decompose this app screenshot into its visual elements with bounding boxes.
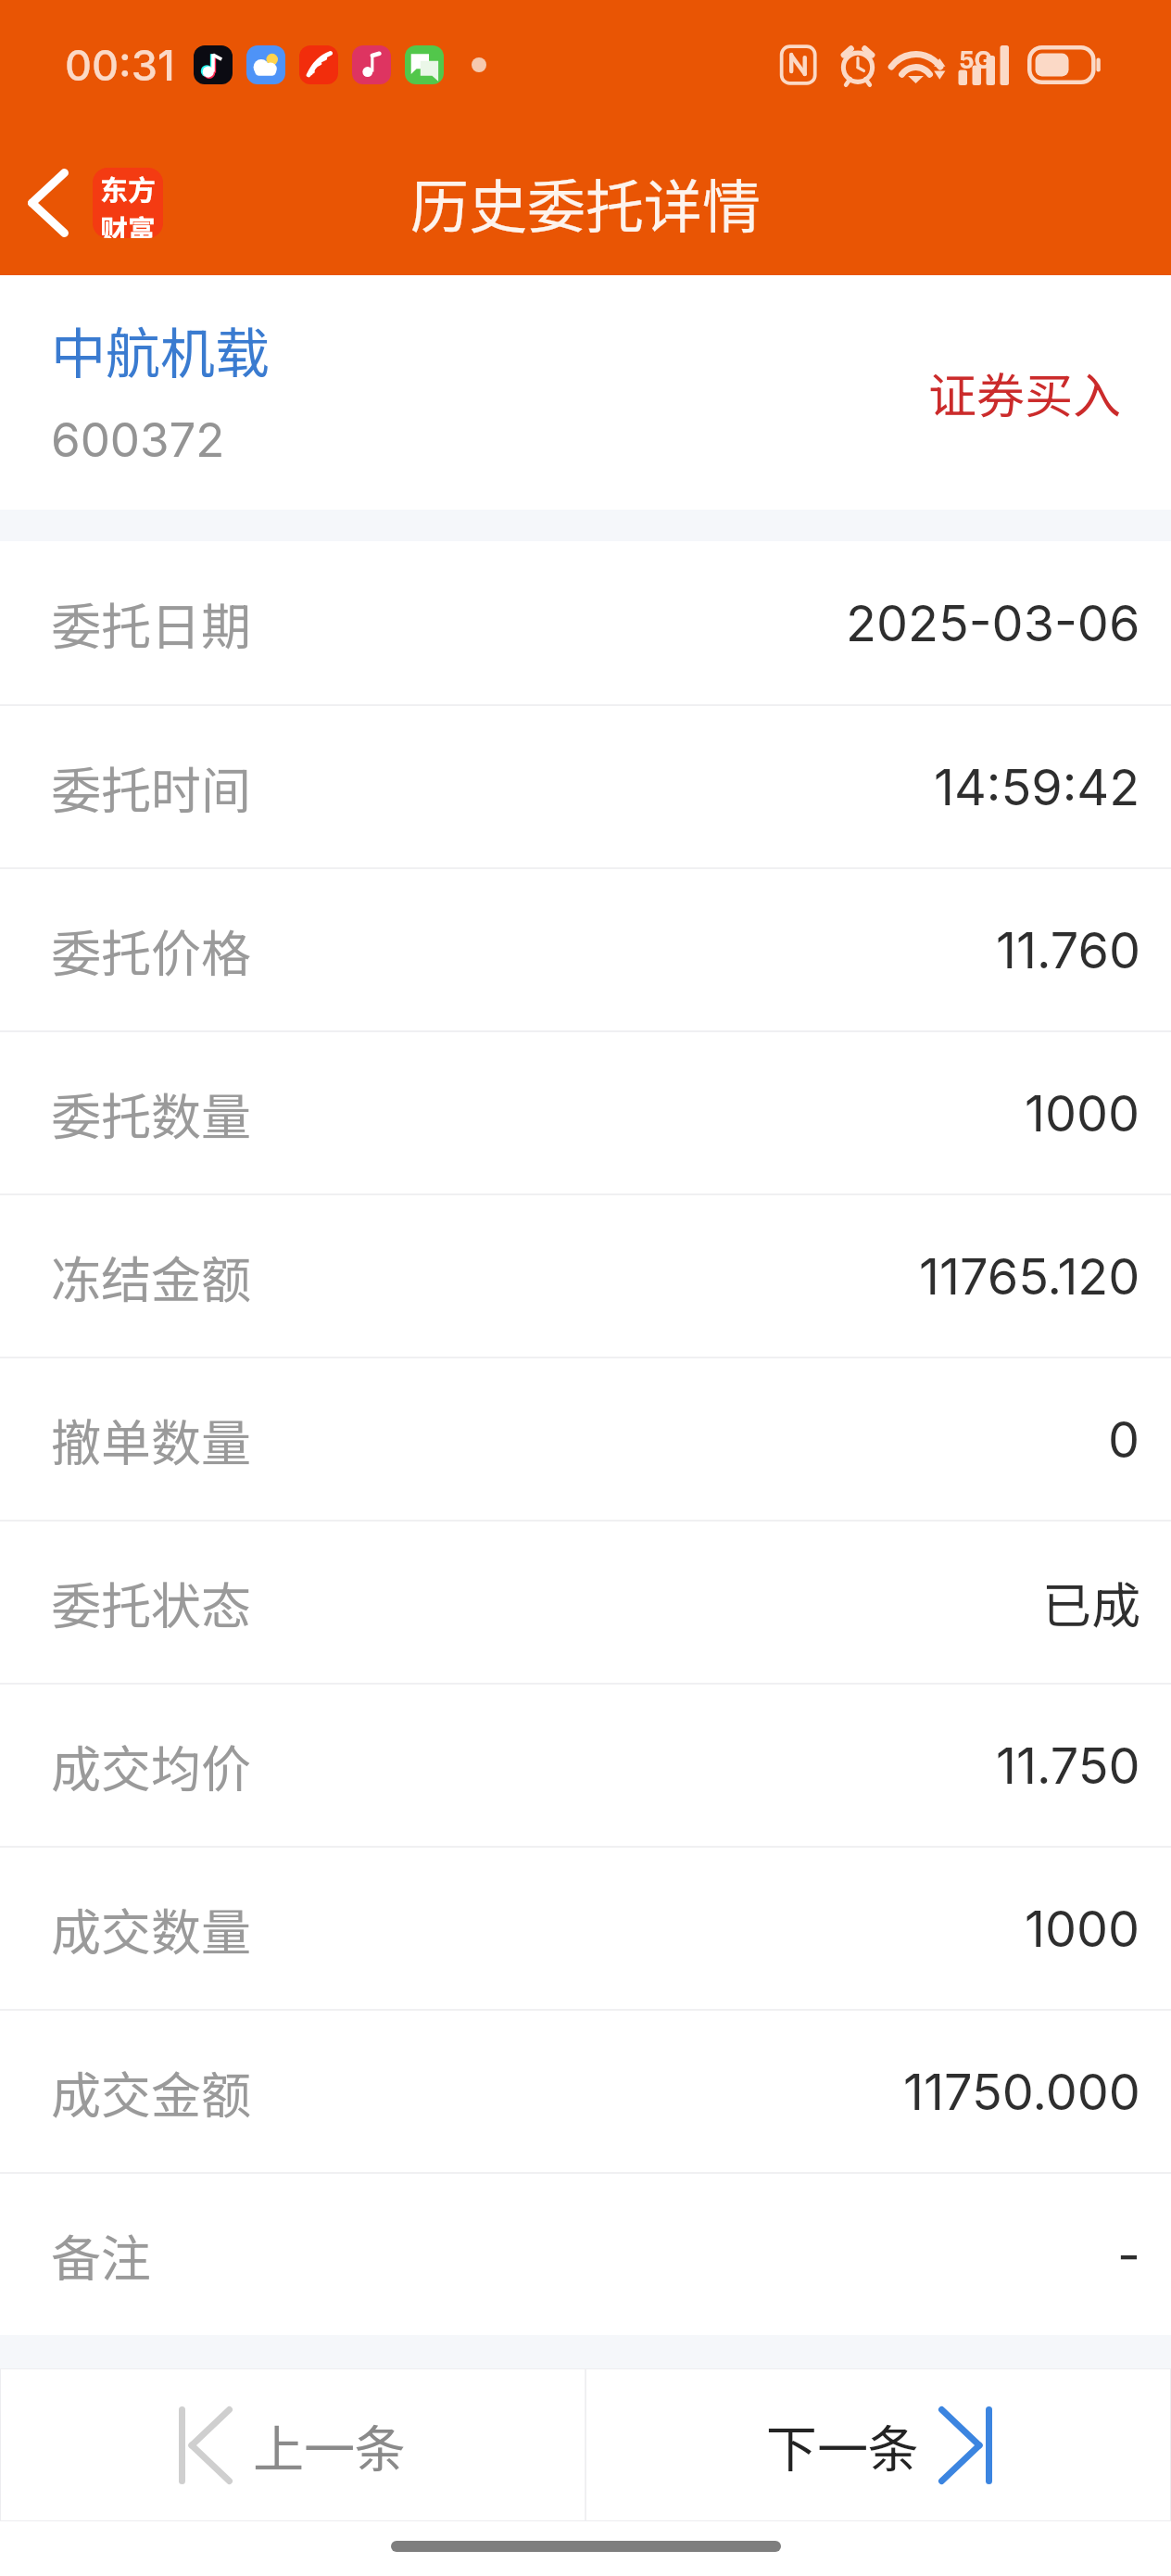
- button[interactable]: 撤单数量: [0, 1358, 1171, 1520]
- button[interactable]: 下一条: [586, 2368, 1171, 2521]
- button[interactable]: 成交均价: [0, 1685, 1171, 1846]
- staticText: 委托日期: [51, 587, 251, 659]
- staticText: 1000: [1025, 1083, 1140, 1143]
- staticText: -: [1117, 2225, 1140, 2285]
- staticText: 委托时间: [51, 751, 251, 823]
- staticText: 中航机载: [51, 310, 271, 389]
- staticText: 成交金额: [51, 2055, 251, 2128]
- staticText: 14:59:42: [934, 757, 1140, 817]
- staticText: 下一条: [766, 2408, 920, 2482]
- staticText: 1000: [1025, 1899, 1140, 1959]
- button[interactable]: 返回: [4, 152, 93, 254]
- button[interactable]: 委托价格: [0, 869, 1171, 1030]
- staticText: 财富: [100, 208, 156, 238]
- staticText: 11.760: [996, 920, 1140, 980]
- staticText: 撤单数量: [51, 1403, 251, 1475]
- staticText: 成交均价: [51, 1729, 251, 1801]
- button[interactable]: 成交数量: [0, 1848, 1171, 2009]
- staticText: 历史委托详情: [410, 160, 761, 245]
- staticText: 2025-03-06: [846, 593, 1140, 653]
- staticText: 上一条: [253, 2408, 407, 2482]
- button[interactable]: 委托状态: [0, 1522, 1171, 1683]
- staticText: 11750.000: [903, 2062, 1140, 2122]
- staticText: 东方: [100, 168, 156, 208]
- staticText: 00:31: [65, 40, 175, 90]
- staticText: 委托价格: [51, 914, 251, 986]
- staticText: 证券买入: [928, 358, 1122, 427]
- staticText: 已成: [1042, 1567, 1140, 1638]
- staticText: 委托数量: [51, 1077, 251, 1149]
- button[interactable]: 成交金额: [0, 2011, 1171, 2172]
- staticText: 11765.120: [919, 1246, 1140, 1307]
- staticText: 成交数量: [51, 1892, 251, 1964]
- staticText: 0: [1108, 1409, 1140, 1470]
- button[interactable]: 委托时间: [0, 706, 1171, 867]
- button[interactable]: 委托日期: [0, 541, 1171, 704]
- button[interactable]: 上一条: [0, 2368, 585, 2521]
- staticText: 11.750: [996, 1736, 1140, 1796]
- staticText: 备注: [51, 2218, 151, 2291]
- staticText: 委托状态: [51, 1566, 251, 1638]
- staticText: 冻结金额: [51, 1240, 251, 1312]
- button[interactable]: 东方财富: [93, 168, 163, 238]
- staticText: 600372: [51, 411, 225, 469]
- button[interactable]: 冻结金额: [0, 1195, 1171, 1357]
- button[interactable]: 委托数量: [0, 1032, 1171, 1193]
- button[interactable]: 备注: [0, 2174, 1171, 2335]
- staticText: 5G: [959, 45, 993, 74]
